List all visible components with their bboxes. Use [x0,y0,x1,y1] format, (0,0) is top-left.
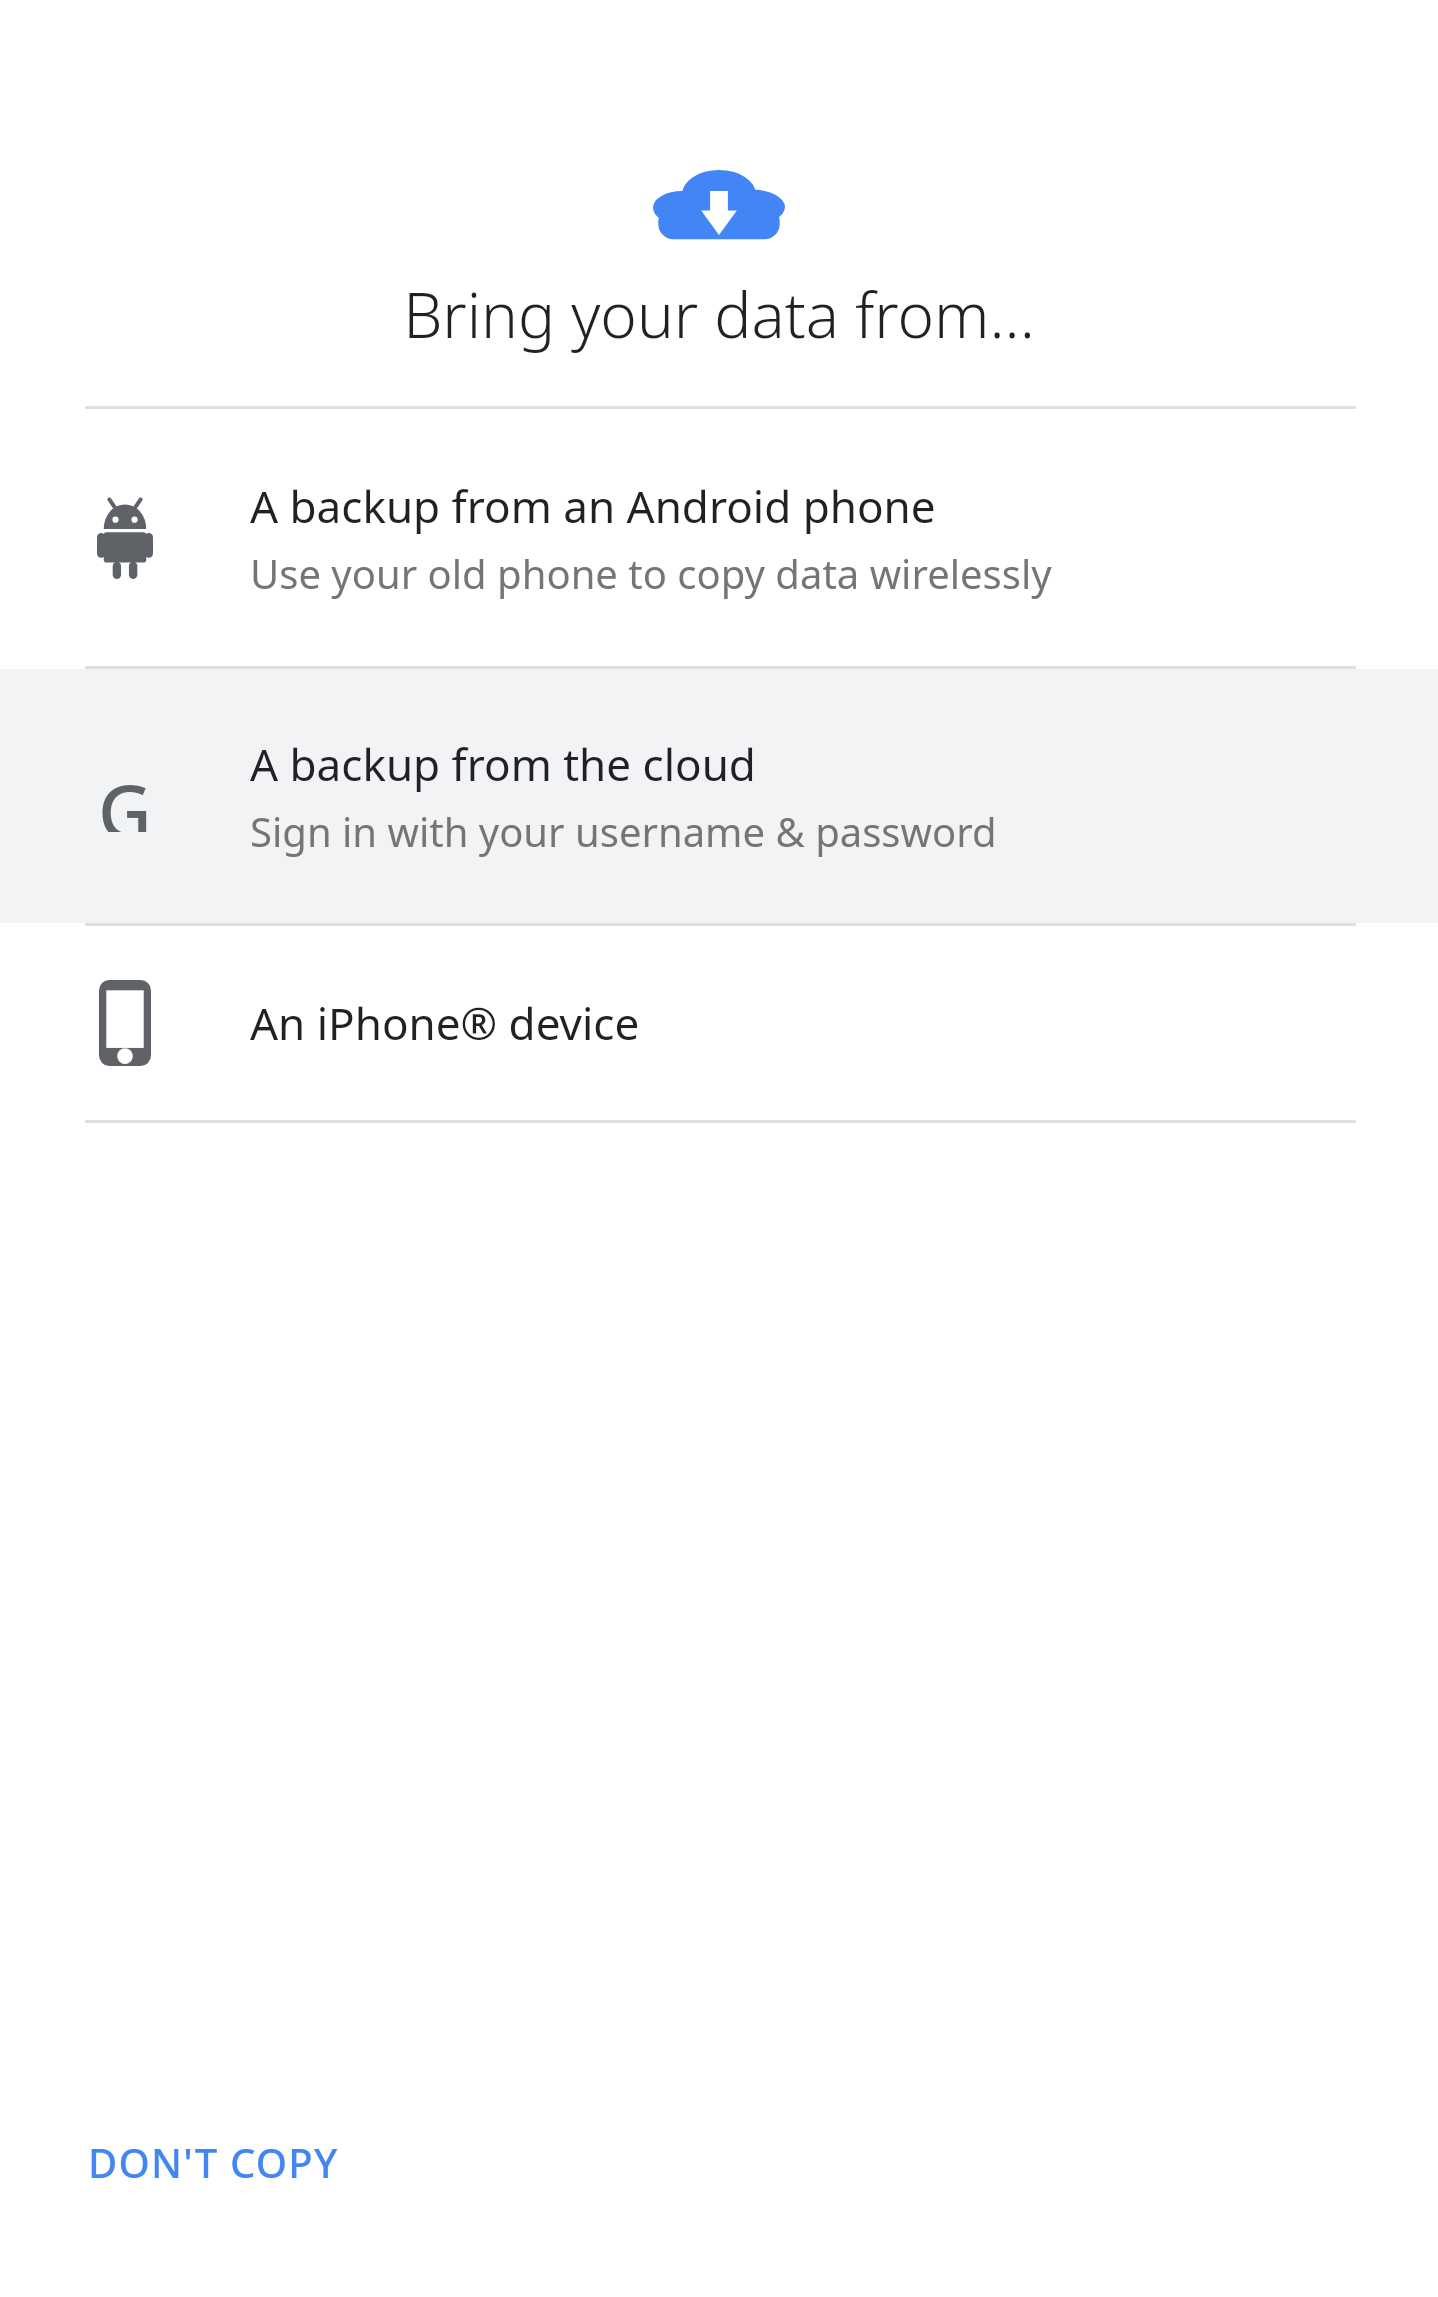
staticText: Sign in with your username & password [250,804,997,858]
button[interactable]: iPhone device [0,926,1438,1120]
other: iPhone device [99,980,151,1066]
other: Android phone [97,497,153,579]
staticText: A backup from the cloud [250,734,756,794]
button[interactable]: DON'T COPY [60,2115,367,2209]
staticText: An iPhone® device [250,993,640,1053]
staticText: G [98,760,152,832]
button[interactable]: Android phone [0,409,1438,666]
staticText: Bring your data from... [403,272,1035,356]
button[interactable]: Google account [0,669,1438,923]
staticText: Use your old phone to copy data wireless… [250,546,1052,600]
staticText: DON'T COPY [88,2135,339,2189]
other: Google account [89,760,161,832]
staticText: A backup from an Android phone [250,476,936,536]
